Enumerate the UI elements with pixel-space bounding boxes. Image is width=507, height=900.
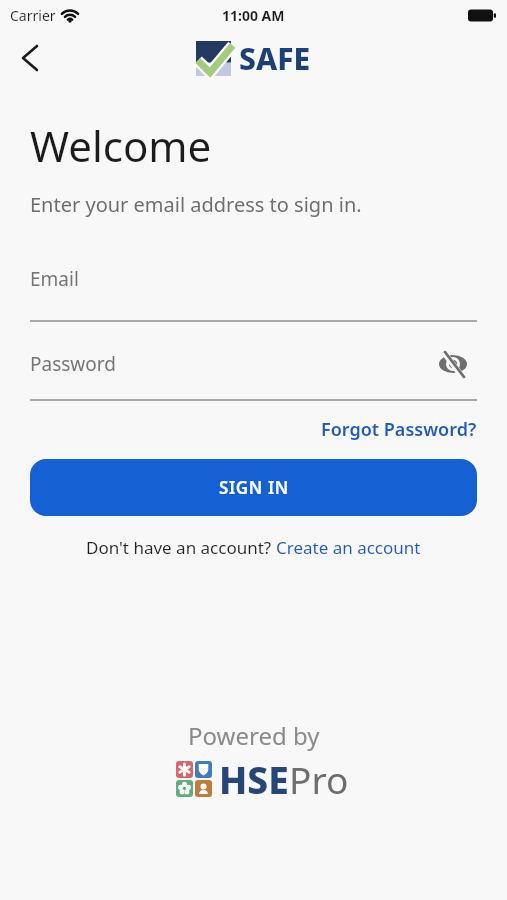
- staticText: Don't have an account?: [86, 536, 276, 559]
- staticText: Pro: [289, 754, 349, 804]
- button[interactable]: SIGN IN: [30, 459, 477, 516]
- staticText: 11:00 AM: [222, 6, 285, 25]
- staticText: Create an account: [276, 536, 421, 559]
- staticText: SIGN IN: [219, 476, 289, 499]
- staticText: Email: [30, 266, 79, 292]
- button[interactable]: [10, 38, 50, 78]
- staticText: Forgot Password?: [321, 417, 477, 442]
- button[interactable]: Forgot Password?: [321, 417, 477, 442]
- staticText: SAFE: [239, 38, 311, 79]
- button[interactable]: Create an account: [276, 536, 421, 559]
- staticText: Powered by: [188, 719, 320, 752]
- staticText: Carrier: [10, 6, 56, 25]
- staticText: Password: [30, 351, 116, 377]
- button[interactable]: Password: [30, 351, 477, 401]
- button[interactable]: Email: [30, 266, 477, 322]
- staticText: Welcome: [30, 117, 212, 174]
- staticText: Enter your email address to sign in.: [30, 191, 362, 218]
- staticText: HSE: [219, 754, 289, 804]
